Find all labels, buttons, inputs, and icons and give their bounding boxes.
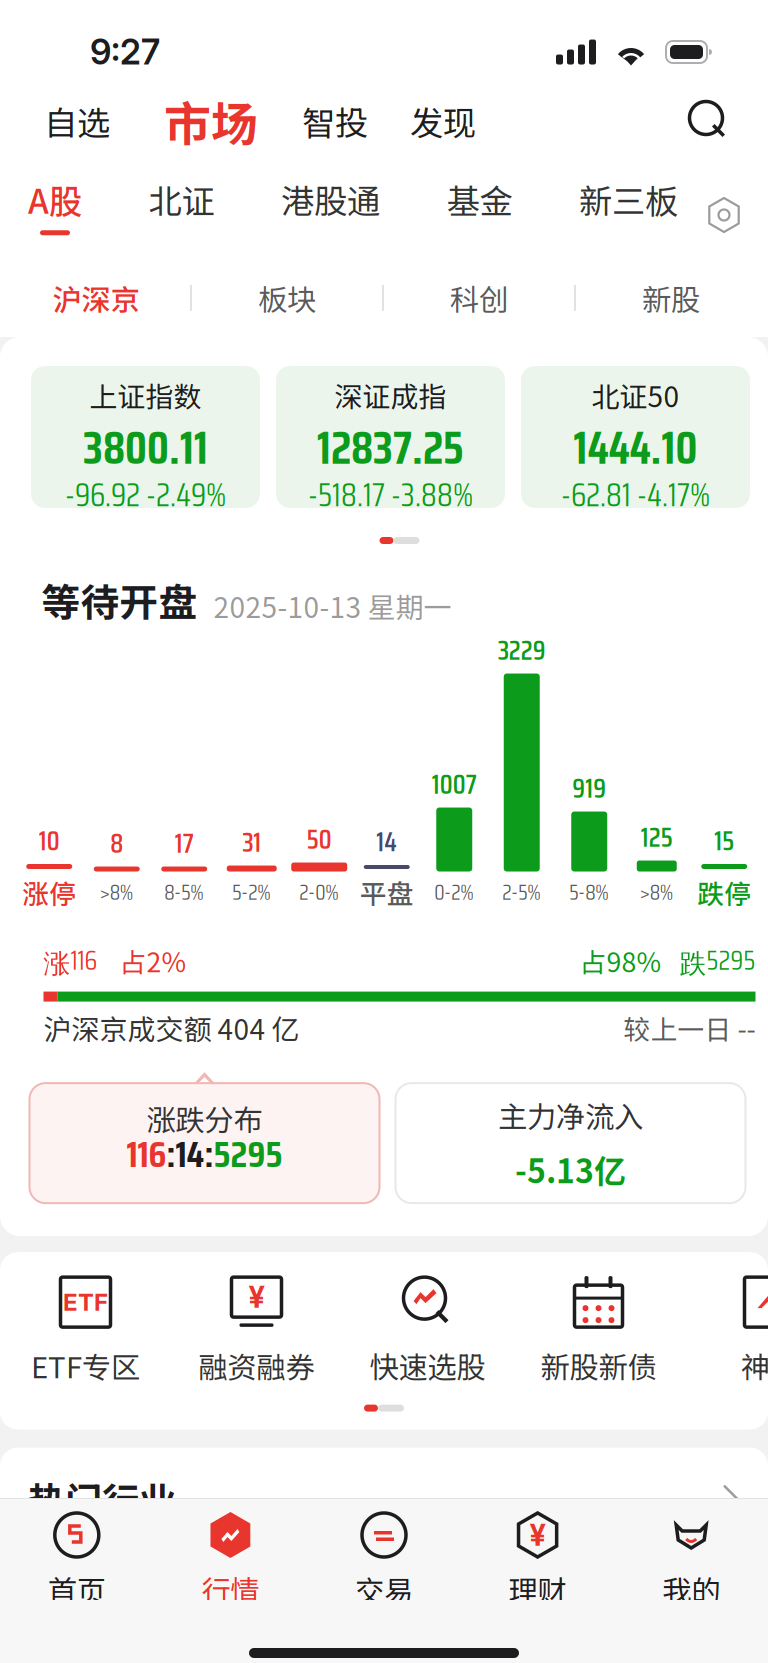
button[interactable]: 北证50 [521,366,750,508]
staticText: 北证 [148,175,214,223]
staticText: 5-8% [569,875,609,909]
button[interactable]: 新股新债 [513,1274,684,1387]
staticText: 3800.11 [83,412,208,484]
button[interactable]: 深证成指 [276,366,505,508]
staticText: 平盘 [360,873,414,912]
button[interactable]: 新三板 [579,175,678,255]
staticText: :14: [166,1125,213,1183]
staticText: 涨跌分布 [146,1097,262,1139]
staticText: 科创 [450,277,508,319]
staticText: 新股新债 [540,1344,656,1387]
staticText: 31 [242,821,261,863]
staticText: 跌5295 [679,940,755,982]
staticText: 市场 [164,87,258,155]
staticText: -62.81 -4.17% [561,470,710,520]
staticText: 50 [307,818,332,860]
staticText: 较上一日 -- [623,1008,755,1047]
button[interactable]: 主力净流入 [395,1083,745,1203]
staticText: 15 [714,820,734,862]
button[interactable]: 新股 [576,261,766,335]
staticText: 1007 [432,763,477,805]
staticText: 3229 [498,629,546,671]
button[interactable]: More categories [704,195,744,235]
staticText: 快速选股 [369,1344,485,1387]
staticText: >8% [100,875,134,909]
staticText: 涨116 [43,940,97,982]
staticText: 125 [641,816,673,858]
staticText: 17 [175,822,194,864]
button[interactable]: 市场 [164,86,258,156]
staticText: 2-5% [502,875,541,909]
staticText: 首页 [48,1568,106,1610]
staticText: 板块 [258,277,316,319]
staticText: 跌停 [697,873,751,912]
staticText: 8-5% [164,875,204,909]
staticText: 交易 [355,1568,413,1610]
staticText: 新股 [642,277,700,319]
button[interactable]: 板块 [192,261,382,335]
staticText: 9:27 [90,31,160,73]
staticText: 涨停 [22,873,76,912]
staticText: -96.92 -2.49% [65,470,226,520]
staticText: 融资融券 [198,1344,314,1387]
staticText: 5-2% [232,875,271,909]
button[interactable]: 首页 [0,1499,154,1600]
staticText: ETF专区 [31,1344,140,1387]
button[interactable]: 我的 [614,1499,768,1600]
staticText: 港股通 [281,175,380,223]
staticText: 1444.10 [573,412,697,484]
button[interactable]: 上证指数 [31,366,260,508]
staticText: 自选 [44,97,110,145]
button[interactable]: 港股通 [281,175,380,255]
staticText: 沪深京 [52,277,139,319]
staticText: 占98% [579,941,661,980]
button[interactable]: 涨跌分布 [29,1083,379,1203]
button[interactable]: ETF [0,1274,171,1387]
button[interactable]: 交易 [307,1499,461,1600]
button[interactable]: ¥ [171,1274,342,1387]
staticText: ¥ [530,1517,546,1553]
button[interactable]: 行情 [154,1499,307,1600]
button[interactable]: A股 [28,175,82,255]
staticText: 基金 [446,175,512,223]
staticText: A股 [28,175,82,223]
staticText: 占2% [119,941,186,980]
button[interactable]: 快速选股 [342,1274,513,1387]
staticText: 0-2% [434,875,474,909]
button[interactable]: ¥ [461,1499,614,1600]
staticText: -518.17 -3.88% [308,470,473,520]
staticText: 12837.25 [317,412,464,484]
staticText: 深证成指 [334,375,446,415]
button[interactable]: 基金 [446,175,512,255]
staticText: 我的 [662,1568,720,1610]
staticText: 919 [572,767,606,809]
staticText: 沪深京成交额 404 亿 [43,1008,299,1048]
staticText: 行情 [201,1568,259,1610]
button[interactable]: 沪深京 [2,261,190,335]
button[interactable]: 科创 [384,261,574,335]
button[interactable]: Search [684,96,734,146]
staticText: 理财 [509,1568,567,1610]
staticText: 2025-10-13 星期一 [213,585,451,626]
staticText: 14 [376,821,397,863]
button[interactable]: 北证 [148,175,214,255]
staticText: 2-0% [299,875,339,909]
staticText: 神奇 [740,1344,768,1387]
staticText: -5.13亿 [515,1146,626,1192]
staticText: 北证50 [591,375,679,415]
staticText: 发现 [410,97,476,145]
staticText: 等待开盘 [41,572,197,628]
button[interactable]: 发现 [410,86,476,156]
staticText: 智投 [302,97,368,145]
staticText: >8% [640,875,674,909]
staticText: ETF [63,1288,108,1317]
button[interactable]: 智投 [302,86,368,156]
staticText: 10 [39,820,60,862]
button[interactable]: 神奇 [684,1274,768,1387]
staticText: ¥ [248,1279,264,1315]
staticText: 116 [126,1125,166,1183]
button[interactable]: 自选 [44,86,110,156]
staticText: 8 [110,822,123,864]
staticText: 主力净流入 [498,1094,643,1136]
staticText: 热门行业 [28,1472,176,1526]
